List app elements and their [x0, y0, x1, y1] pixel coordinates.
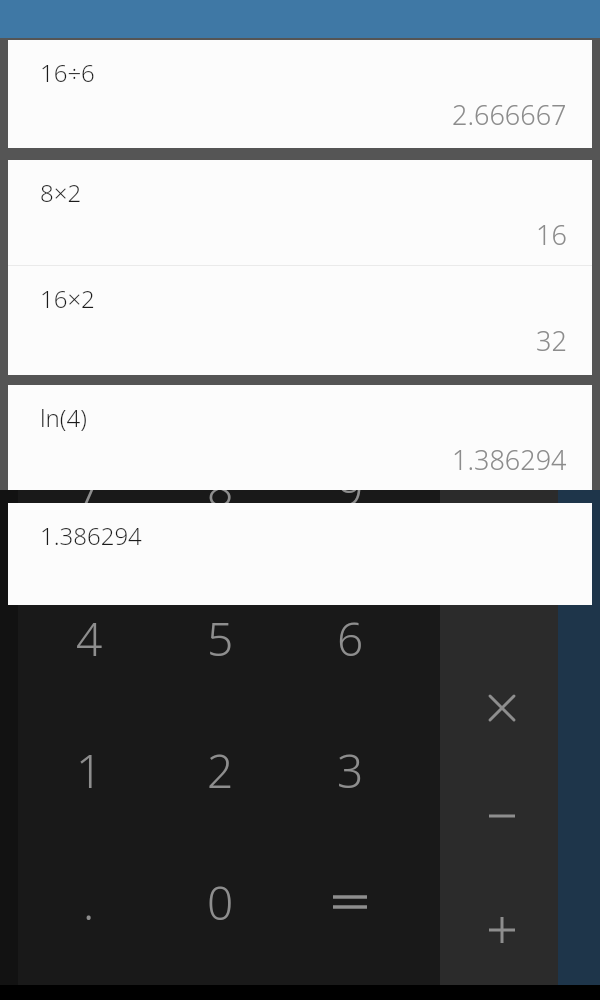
button[interactable]: 0: [165, 868, 275, 936]
button[interactable]: 6: [295, 604, 405, 672]
staticText: 16÷6: [40, 56, 95, 89]
staticText: ln(4): [40, 401, 87, 434]
button[interactable]: Plus: [458, 896, 546, 964]
staticText: 16×2: [40, 282, 95, 315]
button[interactable]: 7: [34, 454, 144, 522]
button[interactable]: 16÷6: [8, 40, 592, 148]
button[interactable]: Multiply: [458, 674, 546, 742]
button[interactable]: 2: [165, 736, 275, 804]
staticText: 8: [207, 457, 234, 520]
staticText: 3: [337, 739, 364, 802]
staticText: 32: [536, 322, 567, 359]
button[interactable]: 3: [295, 736, 405, 804]
staticText: 1.386294: [40, 519, 142, 552]
staticText: .: [83, 871, 95, 934]
button[interactable]: 8×2: [8, 160, 592, 265]
button[interactable]: 9: [295, 454, 405, 522]
button[interactable]: 5: [165, 604, 275, 672]
button[interactable]: 1: [34, 736, 144, 804]
button[interactable]: Equals: [295, 868, 405, 936]
staticText: 16: [536, 216, 567, 253]
button[interactable]: Minus: [458, 782, 546, 850]
button[interactable]: .: [34, 868, 144, 936]
staticText: 2: [207, 739, 234, 802]
staticText: 9: [337, 457, 364, 520]
button[interactable]: 1.386294: [8, 503, 592, 605]
staticText: 0: [207, 871, 234, 934]
staticText: 4: [76, 607, 103, 670]
button[interactable]: ln(4): [8, 385, 592, 490]
button[interactable]: 16×2: [8, 266, 592, 375]
staticText: 2.666667: [452, 96, 567, 133]
staticText: 1.386294: [452, 441, 567, 478]
staticText: 5: [207, 607, 234, 670]
staticText: 6: [337, 607, 364, 670]
staticText: 8×2: [40, 176, 82, 209]
staticText: 7: [76, 457, 103, 520]
button[interactable]: 4: [34, 604, 144, 672]
staticText: 1: [76, 739, 103, 802]
button[interactable]: 8: [165, 454, 275, 522]
